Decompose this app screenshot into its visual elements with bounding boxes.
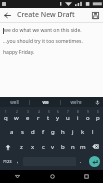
button[interactable]: Back xyxy=(0,170,35,183)
button[interactable]: n xyxy=(68,139,78,154)
button[interactable]: well xyxy=(0,97,29,107)
staticText: we xyxy=(42,99,49,105)
staticText: 1 xyxy=(5,110,7,114)
staticText: v xyxy=(51,143,55,151)
staticText: n xyxy=(71,143,75,151)
staticText: happy Friday. xyxy=(3,49,35,56)
button[interactable]: d xyxy=(28,124,38,139)
button[interactable]: we're xyxy=(61,97,91,107)
staticText: 2 xyxy=(16,110,18,114)
button[interactable]: 1 xyxy=(0,108,11,124)
button[interactable]: 8 xyxy=(73,108,83,124)
staticText: a xyxy=(10,128,14,136)
button[interactable]: g xyxy=(48,124,58,139)
staticText: c xyxy=(42,143,45,151)
button[interactable]: x xyxy=(27,139,38,154)
button[interactable]: we xyxy=(30,97,60,107)
staticText: 5 xyxy=(48,110,50,114)
button[interactable]: 0 xyxy=(93,108,103,124)
button[interactable]: 6 xyxy=(53,108,63,124)
staticText: s xyxy=(21,128,24,136)
staticText: k xyxy=(81,128,85,136)
button[interactable]: h xyxy=(58,124,68,139)
staticText: y xyxy=(56,114,60,122)
staticText: q xyxy=(4,114,8,122)
button[interactable]: f xyxy=(38,124,48,139)
button[interactable]: ?123 xyxy=(0,154,14,169)
staticText: 4 xyxy=(38,110,40,114)
button[interactable]: v xyxy=(48,139,58,154)
button[interactable]: Voice input xyxy=(91,97,103,107)
staticText: r xyxy=(37,114,40,122)
staticText: 8 xyxy=(77,110,79,114)
staticText: t xyxy=(47,114,50,122)
button[interactable]: c xyxy=(38,139,48,154)
button[interactable]: Save draft xyxy=(88,8,102,22)
button[interactable]: 4 xyxy=(33,108,43,124)
staticText: d xyxy=(31,128,35,136)
staticText: o xyxy=(86,114,90,122)
staticText: w xyxy=(14,114,19,122)
button[interactable]: 3 xyxy=(22,108,33,124)
button[interactable]: 5 xyxy=(43,108,53,124)
button[interactable]: b xyxy=(58,139,68,154)
staticText: j xyxy=(72,128,74,136)
button[interactable]: , xyxy=(14,154,22,169)
staticText: Create New Draft xyxy=(17,10,75,20)
staticText: we do what we want on this side. xyxy=(4,27,82,34)
staticText: 0 xyxy=(97,110,99,114)
staticText: u xyxy=(66,114,70,122)
staticText: p xyxy=(96,114,100,122)
button[interactable]: Recent apps xyxy=(69,170,103,183)
button[interactable]: Home xyxy=(35,170,69,183)
staticText: ?123 xyxy=(3,159,12,164)
staticText: m xyxy=(80,143,86,151)
staticText: ...you should try it too sometimes. xyxy=(3,38,83,45)
button[interactable]: a xyxy=(6,124,17,139)
button[interactable]: m xyxy=(78,139,88,154)
staticText: x xyxy=(31,143,35,151)
staticText: we're xyxy=(70,99,82,105)
staticText: e xyxy=(26,114,30,122)
staticText: h xyxy=(61,128,65,136)
button[interactable]: j xyxy=(68,124,78,139)
staticText: 9 xyxy=(87,110,89,114)
button[interactable]: s xyxy=(17,124,28,139)
staticText: 3 xyxy=(27,110,29,114)
button[interactable]: Shift xyxy=(0,139,16,154)
staticText: b xyxy=(61,143,65,151)
button[interactable]: we do what we want on this side. xyxy=(0,23,103,97)
button[interactable]: k xyxy=(78,124,88,139)
staticText: 6 xyxy=(57,110,59,114)
button[interactable]: Navigate up xyxy=(0,8,14,22)
button[interactable]: . xyxy=(77,154,85,169)
button[interactable]: 9 xyxy=(83,108,93,124)
staticText: l xyxy=(92,128,94,136)
staticText: , xyxy=(17,158,19,165)
staticText: f xyxy=(42,128,45,136)
staticText: 7 xyxy=(67,110,69,114)
staticText: g xyxy=(51,128,55,136)
staticText: i xyxy=(77,114,79,122)
button[interactable]: z xyxy=(16,139,27,154)
staticText: well xyxy=(10,99,19,105)
button[interactable]: Enter xyxy=(89,156,100,167)
button[interactable]: Backspace xyxy=(88,139,103,154)
staticText: . xyxy=(80,158,82,165)
button[interactable]: 7 xyxy=(63,108,73,124)
staticText: z xyxy=(20,143,23,151)
button[interactable]: l xyxy=(88,124,98,139)
button[interactable]: 2 xyxy=(11,108,22,124)
